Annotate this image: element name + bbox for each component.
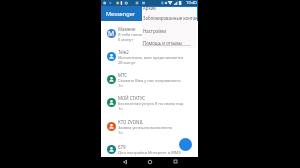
- button[interactable]: МОЙ СТАТУС: [101, 91, 198, 114]
- button[interactable]: Настройки: [142, 28, 197, 40]
- button[interactable]: New message: [179, 138, 192, 151]
- staticText: Для настройки Интернет и MMS: [118, 150, 181, 155]
- staticText: Помощь и отзывы: [143, 40, 183, 46]
- button[interactable]: M: [101, 22, 198, 45]
- staticText: Заблокированные контакты: [143, 15, 197, 21]
- staticText: Заявка успешно выполнена: [118, 125, 173, 130]
- staticText: Настройки: [143, 28, 166, 34]
- staticText: Бесплатная услуга Я на связи под: [118, 101, 184, 106]
- staticText: 10:40: [186, 0, 197, 6]
- staticText: 5 минут: [118, 37, 134, 42]
- staticText: 1ч: [118, 106, 123, 111]
- staticText: МТС: [118, 72, 128, 78]
- staticText: 1ч: [118, 83, 123, 88]
- button[interactable]: Помощь и отзывы: [142, 40, 197, 52]
- staticText: 679: [118, 144, 126, 150]
- button[interactable]: Архив: [142, 5, 197, 17]
- staticText: Я тебя написал: [118, 32, 148, 37]
- button[interactable]: Back: [120, 157, 129, 166]
- staticText: 1ч: [118, 130, 123, 135]
- button[interactable]: МТС: [101, 68, 198, 91]
- staticText: Tele2: [118, 49, 129, 55]
- button[interactable]: КТО ZVONIL: [101, 115, 198, 138]
- staticText: Скажите Вам у нас понравилось: [118, 78, 181, 83]
- button[interactable]: Recents: [171, 157, 180, 166]
- staticText: Архив: [143, 5, 156, 11]
- staticText: КТО ZVONIL: [118, 119, 144, 125]
- button[interactable]: Tele2: [101, 45, 198, 68]
- button[interactable]: 679: [101, 138, 198, 161]
- staticText: МОЙ СТАТУС: [118, 95, 146, 101]
- button[interactable]: Заблокированные контакты: [142, 15, 197, 27]
- button[interactable]: Home: [145, 157, 154, 166]
- staticText: Мамкин: [118, 26, 136, 32]
- staticText: M: [108, 29, 115, 38]
- staticText: 28 минут: [118, 60, 136, 65]
- staticText: Исполнение, вам представляется: [118, 55, 184, 60]
- staticText: Messenger: [106, 10, 136, 18]
